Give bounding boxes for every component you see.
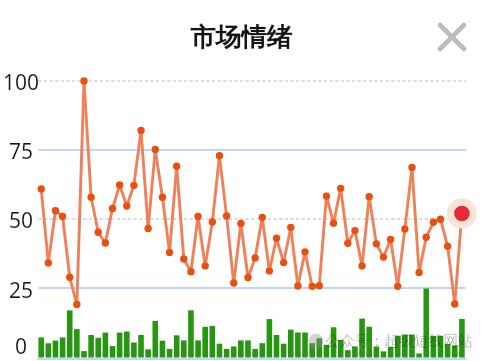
staticText: 公众号：超级短线网站 xyxy=(325,332,473,351)
staticText: 0 xyxy=(1,332,41,360)
button[interactable]: Close xyxy=(434,19,470,55)
staticText: 100 xyxy=(1,68,41,96)
staticText: 25 xyxy=(1,276,41,304)
staticText: 市场情绪 xyxy=(190,21,292,53)
staticText: 75 xyxy=(1,137,41,165)
staticText: 50 xyxy=(1,206,41,234)
